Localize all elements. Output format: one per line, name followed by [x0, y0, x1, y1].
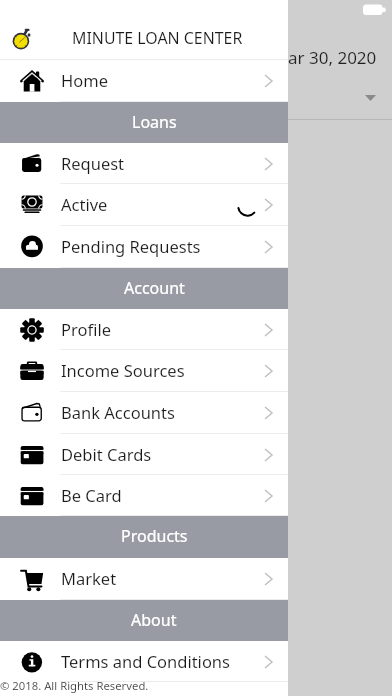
staticText: Income Sources [61, 359, 185, 381]
button[interactable]: Active [0, 184, 288, 226]
staticText: Request [61, 152, 125, 174]
staticText: Pending Requests [61, 235, 201, 257]
staticText: Debit Cards [61, 443, 152, 465]
button[interactable]: Home [0, 60, 288, 102]
button[interactable]: Profile [0, 309, 288, 350]
staticText: Products [121, 525, 188, 547]
staticText: About [131, 609, 177, 631]
staticText: Active [61, 193, 108, 215]
staticText: Home [61, 69, 108, 91]
button[interactable]: Terms and Conditions [0, 641, 288, 682]
staticText: Bank Accounts [61, 401, 175, 423]
button[interactable]: Debit Cards [0, 434, 288, 475]
button[interactable]: Be Card [0, 475, 288, 516]
staticText: MINUTE LOAN CENTER [72, 27, 243, 49]
staticText: Day: Mar 30, 2020 [233, 46, 377, 69]
button[interactable]: Pending Requests [0, 226, 288, 268]
staticText: Loans [132, 111, 177, 133]
staticText: Account [124, 277, 185, 299]
button[interactable]: Market [0, 558, 288, 600]
button[interactable]: Income Sources [0, 350, 288, 392]
staticText: Profile [61, 318, 111, 340]
staticText: Be Card [61, 484, 122, 506]
button[interactable]: Bank Accounts [0, 392, 288, 434]
staticText: Terms and Conditions [61, 650, 230, 672]
staticText: © 2018. All Rights Reserved. [0, 678, 149, 693]
staticText: Market [61, 567, 117, 589]
button[interactable]: Request [0, 143, 288, 184]
